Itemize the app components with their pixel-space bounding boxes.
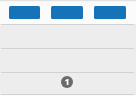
button[interactable]: Delete xyxy=(94,6,126,19)
button[interactable]: Edit xyxy=(51,6,83,19)
button[interactable] xyxy=(0,72,136,96)
button[interactable] xyxy=(0,24,136,48)
button[interactable]: Page 1 xyxy=(0,72,136,94)
button[interactable]: Page 1 xyxy=(61,76,73,88)
button[interactable]: Add xyxy=(9,6,40,19)
button[interactable] xyxy=(0,48,136,72)
